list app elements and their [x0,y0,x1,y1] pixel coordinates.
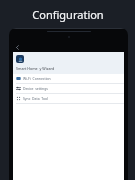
staticText: Smart Home y Wizard [16,66,55,71]
staticText: Device settings [23,86,48,91]
button[interactable]: Smart Home y Wizard [13,52,124,74]
button[interactable]: Sync Data Tool [13,94,124,103]
button[interactable]: Wi-Fi Connection [13,74,124,83]
staticText: Sync Data Tool [23,96,48,101]
button[interactable]: Back [12,42,22,52]
staticText: Wi-Fi Connection [23,76,51,81]
button[interactable]: Device settings [13,84,124,93]
staticText: Configuration [32,7,104,22]
